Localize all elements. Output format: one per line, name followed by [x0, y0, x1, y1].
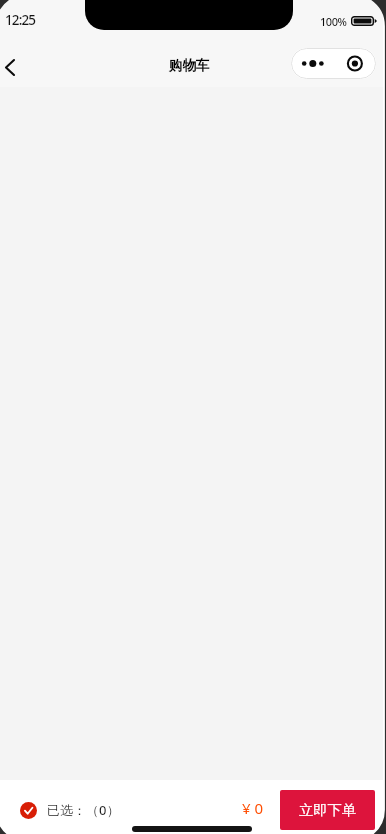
- button[interactable]: 立即下单: [280, 790, 375, 830]
- staticText: ¥ 0: [242, 798, 264, 818]
- staticText: 购物车: [169, 57, 210, 74]
- button[interactable]: Back: [0, 47, 23, 87]
- staticText: 立即下单: [299, 801, 357, 819]
- staticText: 已选：（0）: [47, 801, 120, 819]
- button[interactable]: More options: [291, 48, 376, 79]
- button[interactable]: 已选：（0）: [20, 796, 120, 824]
- staticText: 12:25: [5, 11, 36, 29]
- staticText: 100%: [320, 14, 347, 29]
